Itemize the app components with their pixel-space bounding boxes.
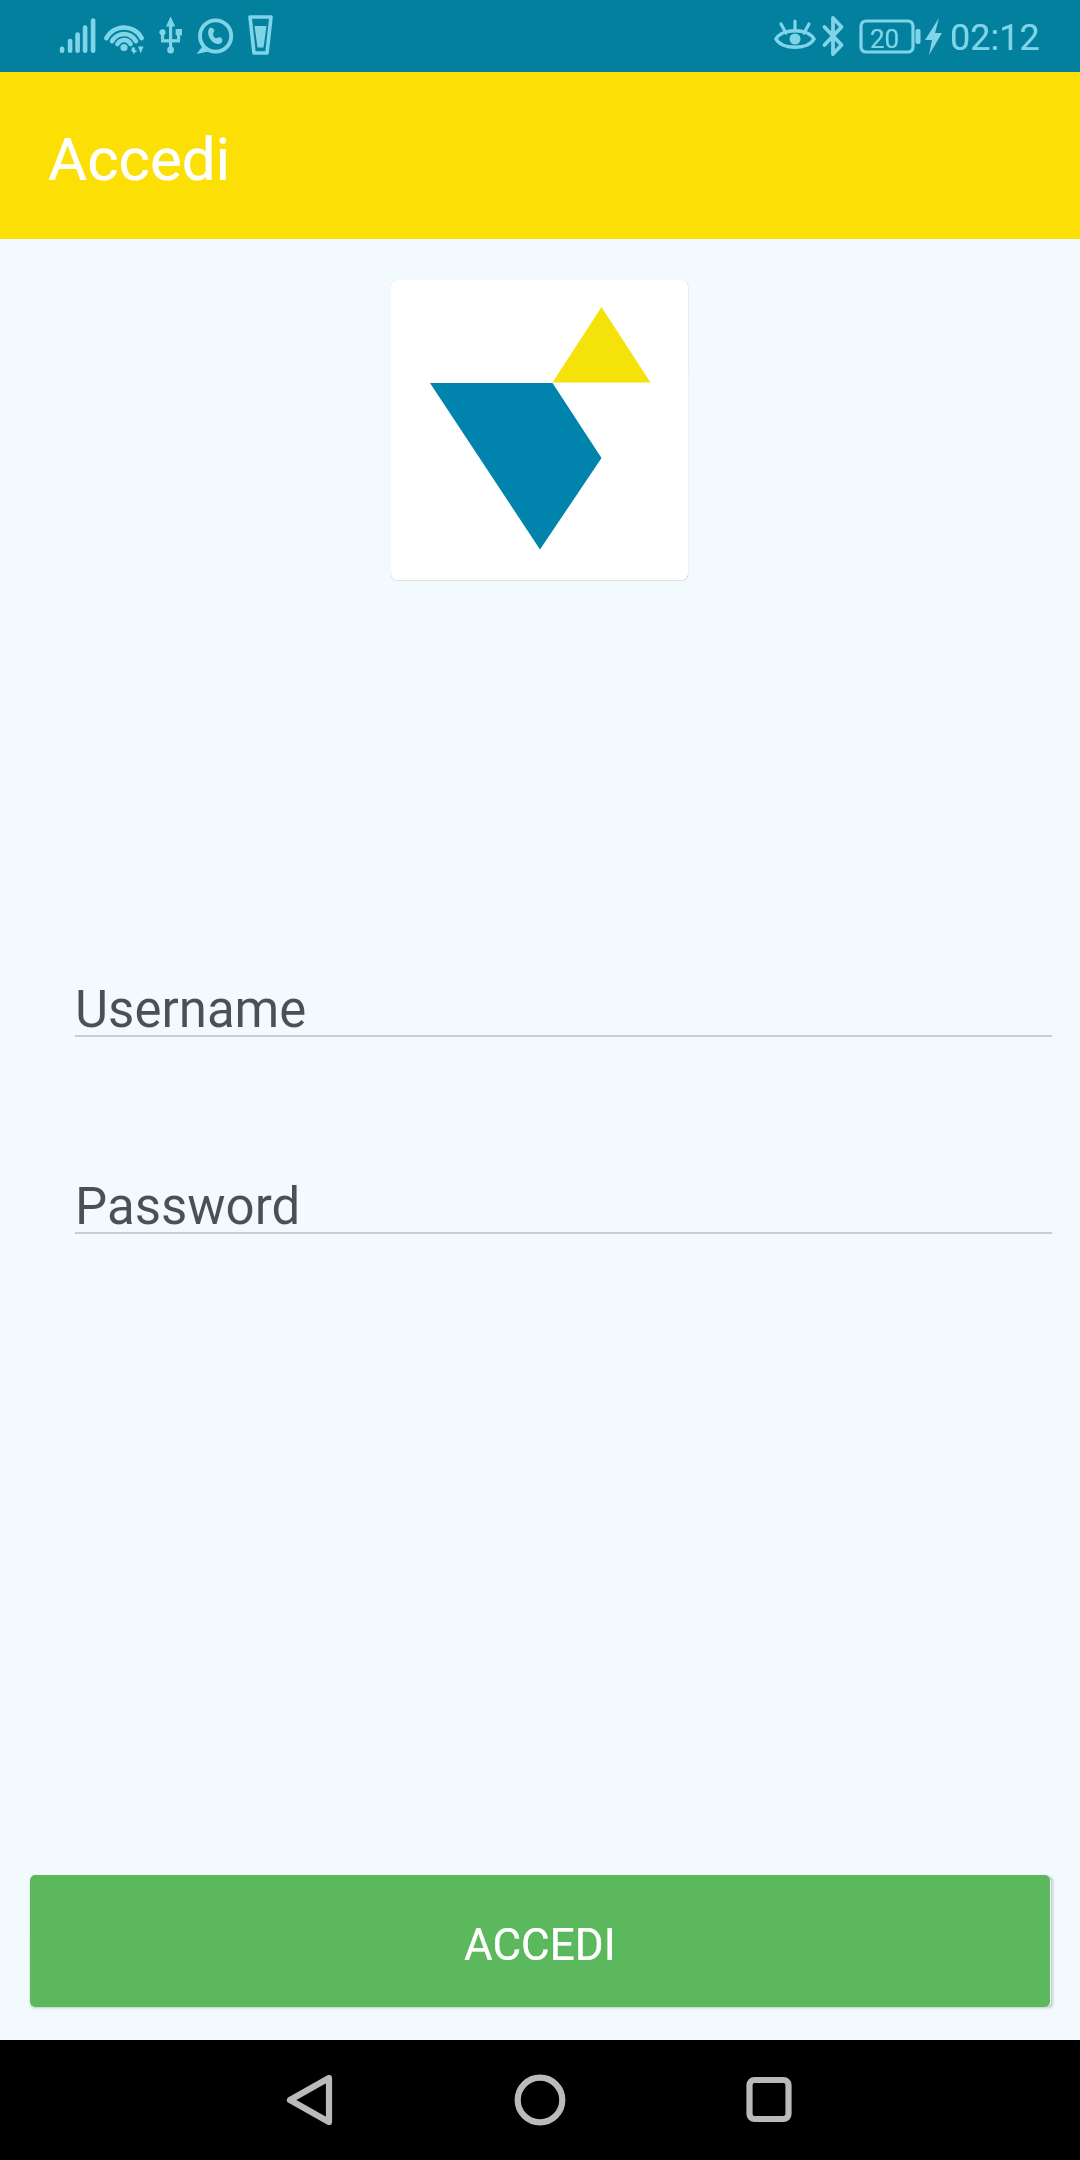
- staticText: ACCEDI: [464, 1919, 616, 1971]
- button[interactable]: Username: [0, 954, 1080, 1064]
- staticText: Accedi: [48, 124, 231, 194]
- staticText: Username: [75, 980, 307, 1040]
- button[interactable]: ACCEDI: [30, 1875, 1050, 2007]
- staticText: 20: [870, 24, 900, 54]
- staticText: Password: [75, 1177, 301, 1237]
- button[interactable]: Recent apps: [670, 2040, 870, 2160]
- button[interactable]: Password: [0, 1151, 1080, 1261]
- button[interactable]: Home: [440, 2040, 640, 2160]
- staticText: 02:12: [950, 17, 1040, 59]
- button[interactable]: Back: [210, 2040, 410, 2160]
